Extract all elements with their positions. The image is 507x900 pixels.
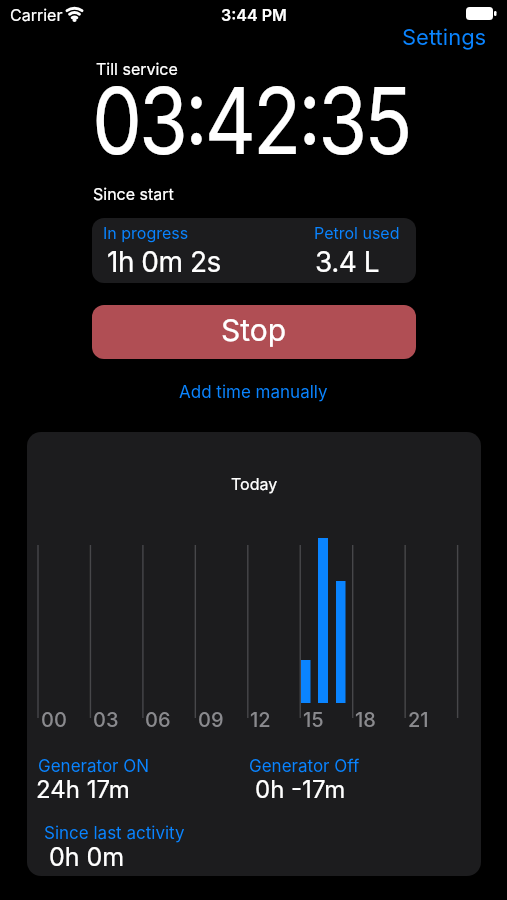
staticText: 0h -17m (255, 775, 346, 804)
staticText: 00 (41, 708, 67, 732)
staticText: 06 (145, 708, 171, 732)
staticText: Today (231, 474, 278, 493)
button[interactable]: Add time manually (179, 382, 328, 403)
staticText: 09 (198, 708, 224, 732)
staticText: Generator Off (249, 756, 360, 777)
staticText: 21 (408, 708, 429, 732)
staticText: Generator ON (38, 756, 150, 777)
button[interactable]: Stop (92, 305, 416, 359)
staticText: 24h 17m (36, 775, 130, 804)
staticText: 1h 0m 2s (107, 245, 221, 279)
staticText: Stop (221, 312, 287, 348)
staticText: 03:42:35 (92, 65, 410, 176)
staticText: 03 (93, 708, 119, 732)
staticText: 0h 0m (49, 842, 125, 872)
staticText: 18 (355, 708, 376, 732)
button[interactable]: Settings (402, 24, 487, 51)
staticText: 15 (303, 708, 324, 732)
staticText: Till service (96, 59, 178, 78)
staticText: Since last activity (44, 823, 185, 844)
staticText: In progress (103, 223, 189, 242)
staticText: Since start (93, 184, 174, 203)
staticText: Carrier (10, 5, 63, 24)
staticText: 12 (250, 708, 271, 732)
staticText: 3:44 PM (221, 5, 287, 24)
staticText: 3.4 L (315, 245, 380, 279)
staticText: Petrol used (314, 223, 400, 242)
